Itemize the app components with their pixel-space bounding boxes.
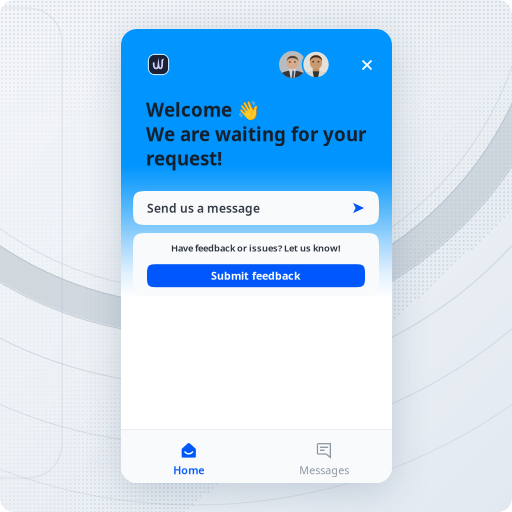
staticText: Messages [299, 463, 349, 477]
staticText: request! [146, 146, 222, 171]
button[interactable]: Home [121, 429, 256, 483]
staticText: Welcome 👋 [146, 97, 260, 122]
staticText: We are waiting for your [146, 121, 366, 146]
button[interactable]: Messages [256, 429, 392, 483]
staticText: Have feedback or issues? Let us know! [171, 242, 341, 254]
button[interactable]: Close [353, 51, 381, 79]
staticText: Home [173, 463, 204, 477]
staticText: Send us a message [147, 200, 260, 216]
staticText: Submit feedback [211, 269, 301, 283]
button[interactable]: Send us a message [133, 191, 379, 225]
button[interactable]: Submit feedback [147, 264, 365, 287]
